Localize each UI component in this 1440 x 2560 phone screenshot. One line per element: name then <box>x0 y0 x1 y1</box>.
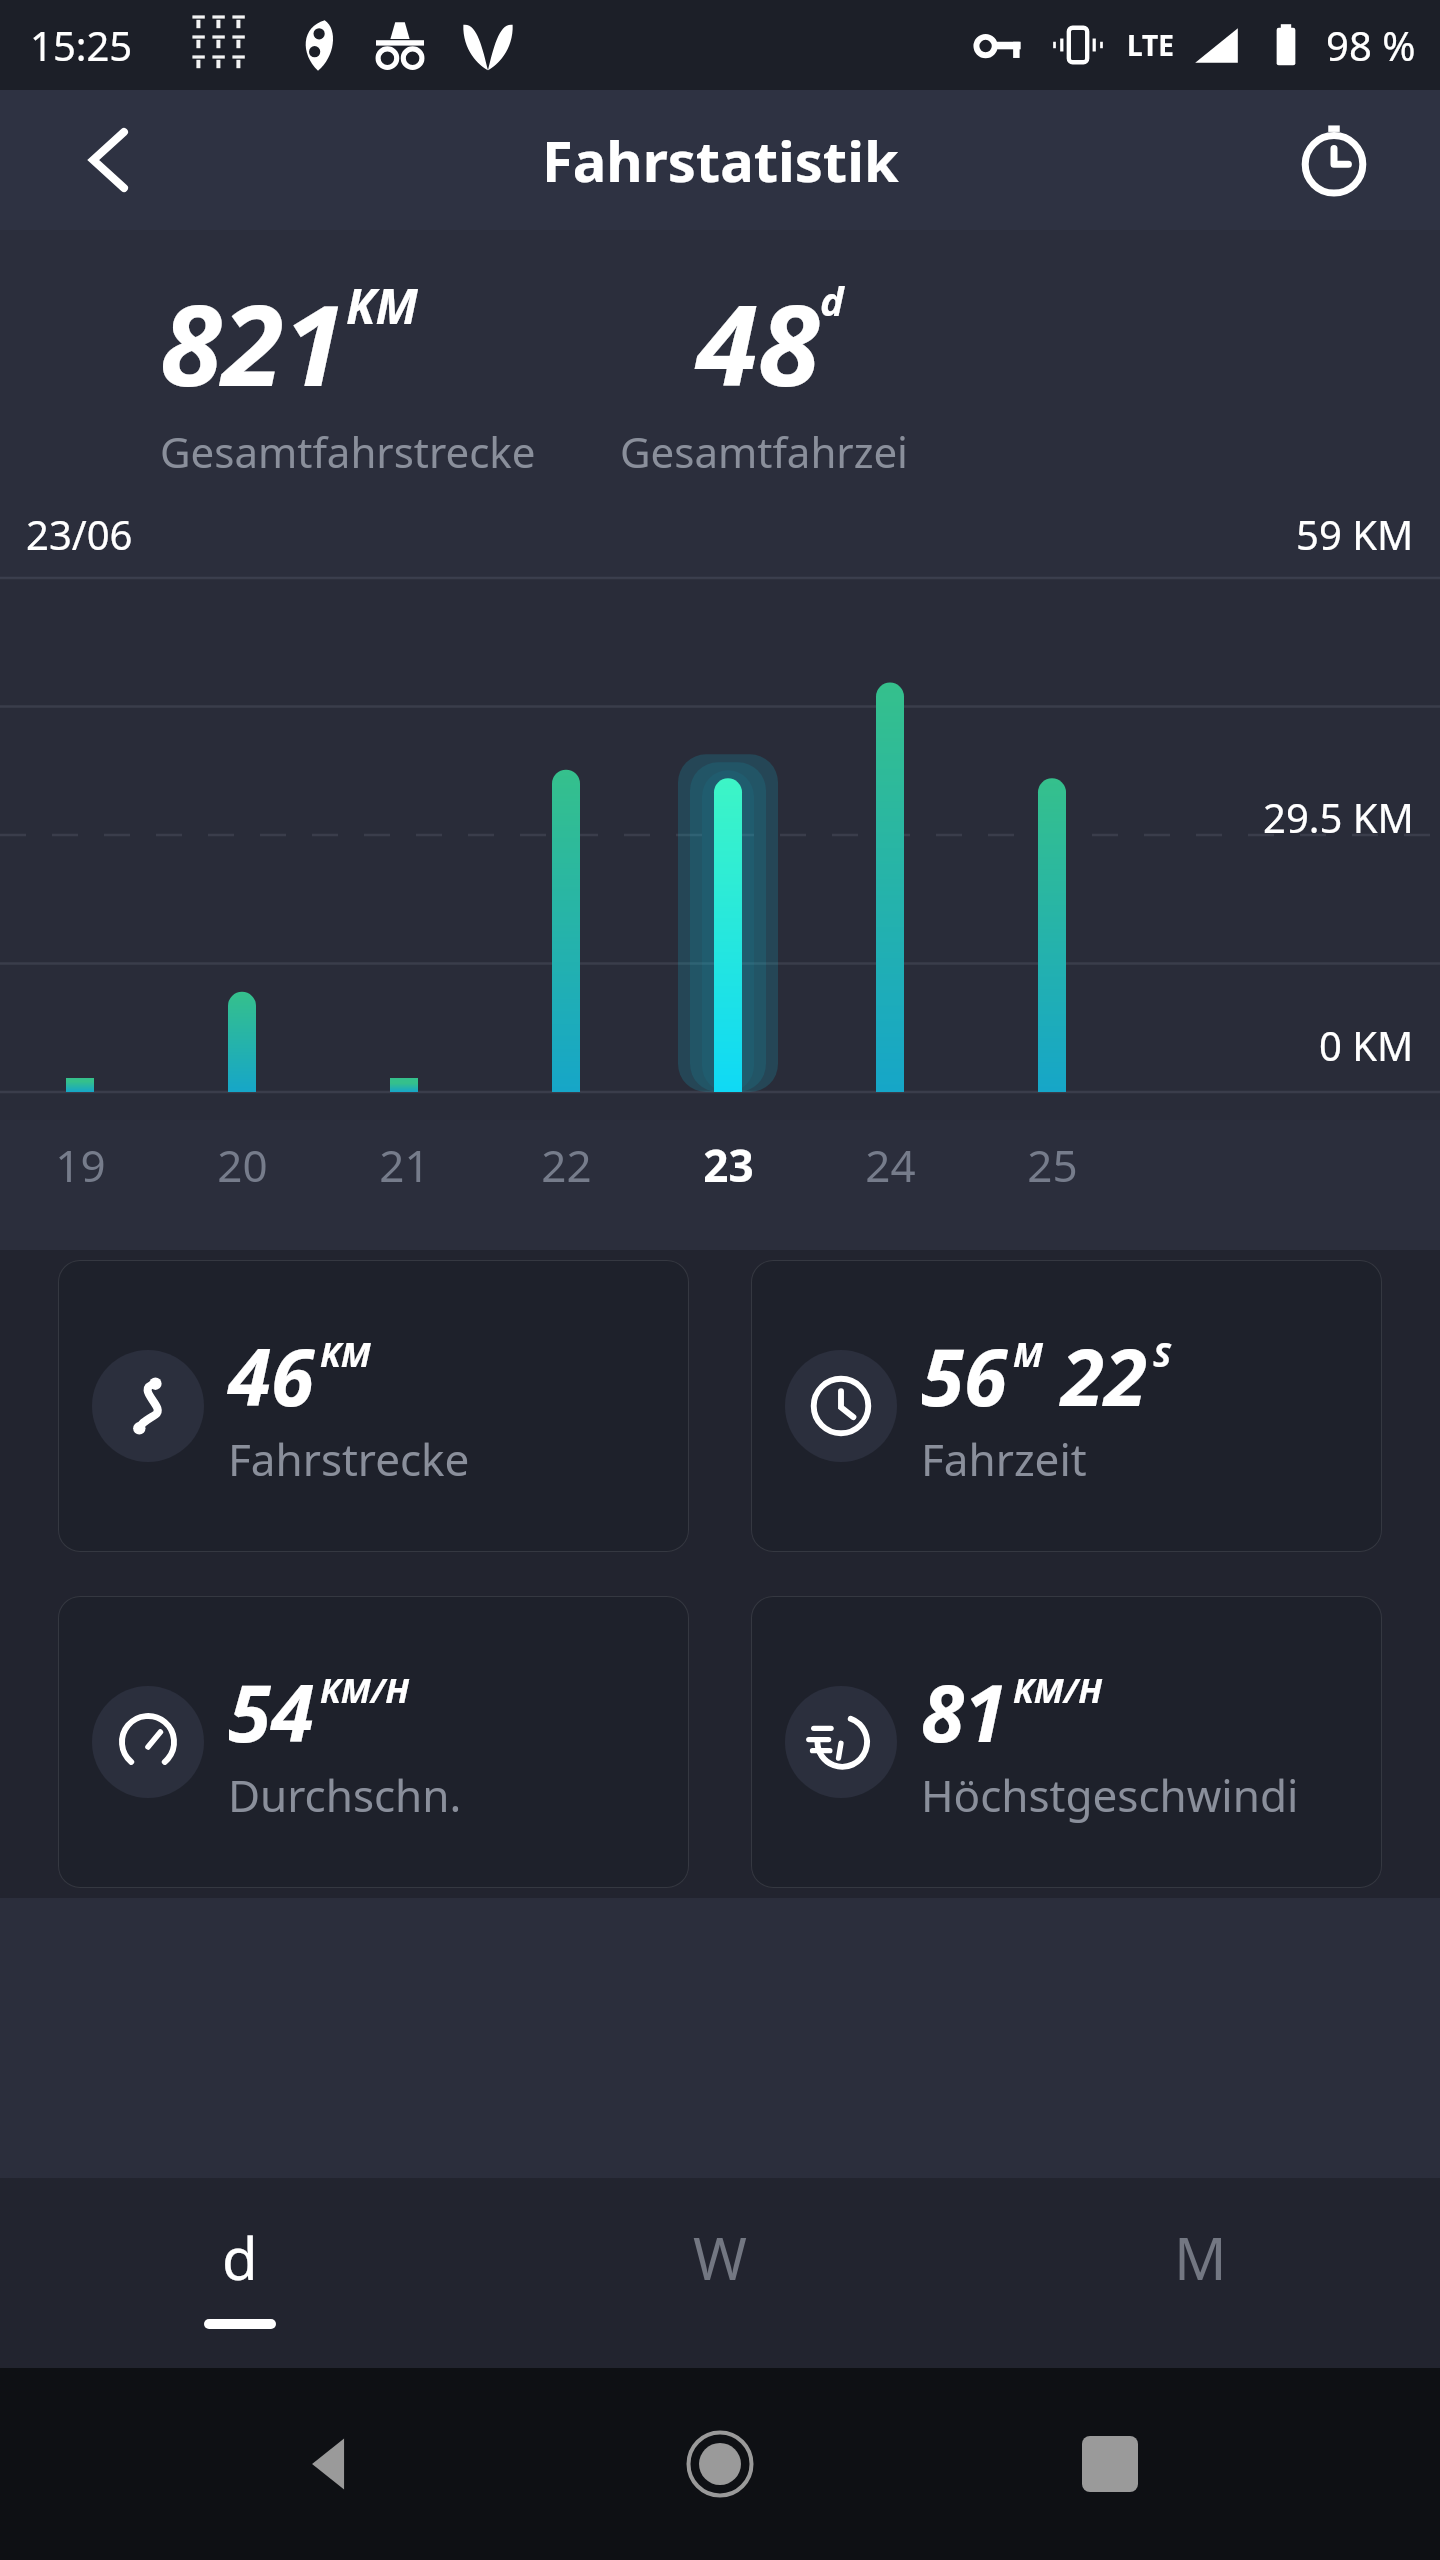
staticText: d <box>222 2218 258 2297</box>
button[interactable]: W <box>480 2178 960 2368</box>
button[interactable]: 24 <box>850 1132 930 1198</box>
button[interactable]: 56 <box>751 1260 1382 1552</box>
staticText: Gesamtfahrzeit <box>620 423 920 526</box>
button[interactable]: Startbildschirm <box>660 2404 780 2524</box>
staticText: KM/H <box>1013 1667 1103 1713</box>
staticText: 22 <box>541 1135 592 1195</box>
button[interactable]: 20 <box>202 1132 282 1198</box>
staticText: S <box>1153 1331 1172 1377</box>
button[interactable]: M <box>960 2178 1440 2368</box>
button[interactable]: 19 <box>40 1132 120 1198</box>
staticText: 20 <box>217 1135 268 1195</box>
staticText: 98 % <box>1326 18 1416 72</box>
staticText: 23/06 <box>26 507 133 561</box>
button[interactable]: 23 <box>688 1132 768 1198</box>
staticText: 81 <box>921 1659 1007 1765</box>
button[interactable]: d <box>0 2178 480 2368</box>
staticText: M <box>1013 1331 1043 1377</box>
button[interactable]: 22 <box>526 1132 606 1198</box>
staticText: M <box>1174 2218 1227 2297</box>
staticText: 15:25 <box>30 18 133 72</box>
staticText: 23 <box>703 1135 754 1195</box>
staticText: 24 <box>865 1135 916 1195</box>
staticText: 59 KM <box>1296 507 1414 561</box>
button[interactable]: Zurück <box>270 2404 390 2524</box>
staticText: Durchschn. <box>228 1765 462 1825</box>
staticText: Fahrstrecke <box>228 1429 470 1489</box>
button[interactable]: 25 <box>1012 1132 1092 1198</box>
button[interactable]: 81 <box>751 1596 1382 1888</box>
staticText: 25 <box>1027 1135 1078 1195</box>
staticText: 29.5 KM <box>1263 790 1414 844</box>
staticText: 56 <box>921 1323 1007 1429</box>
staticText: Gesamtfahrstrecke <box>160 423 536 480</box>
staticText: 0 KM <box>1319 1018 1414 1072</box>
staticText: W <box>693 2218 747 2297</box>
button[interactable]: Timer <box>1284 110 1384 210</box>
staticText: Fahrzeit <box>921 1429 1087 1489</box>
staticText: 19 <box>55 1135 106 1195</box>
staticText: d <box>820 273 844 327</box>
button[interactable]: 46 <box>58 1260 689 1552</box>
staticText: KM/H <box>320 1667 410 1713</box>
staticText: Fahrstatistik <box>542 122 899 198</box>
staticText: 22 <box>1061 1323 1147 1429</box>
button[interactable]: 21 <box>364 1132 444 1198</box>
staticText: 821 <box>160 266 346 419</box>
staticText: 46 <box>228 1323 314 1429</box>
staticText: KM <box>346 273 418 338</box>
staticText: 54 <box>228 1659 314 1765</box>
staticText: Höchstgeschwindi <box>921 1765 1299 1825</box>
staticText: LTE <box>1127 26 1174 64</box>
staticText: KM <box>320 1331 371 1377</box>
button[interactable]: Übersicht <box>1050 2404 1170 2524</box>
staticText: 48 <box>696 266 820 419</box>
staticText: 21 <box>379 1135 430 1195</box>
button[interactable]: 54 <box>58 1596 689 1888</box>
button[interactable]: Zurück <box>60 110 160 210</box>
